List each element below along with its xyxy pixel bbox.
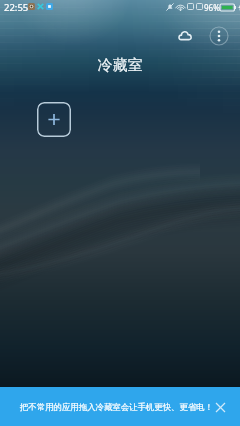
button[interactable]: Cloud backup [171, 22, 199, 50]
staticText: 96% [204, 2, 220, 13]
button[interactable]: More options [205, 22, 233, 50]
staticText: 把不常用的应用拖入冷藏室会让手机更快、更省电！ [20, 402, 213, 413]
staticText: 冷藏室 [0, 56, 240, 75]
staticText: 22:55 [4, 1, 29, 14]
button[interactable]: 把不常用的应用拖入冷藏室会让手机更快、更省电！ [0, 387, 240, 426]
button[interactable]: Add app [37, 102, 71, 137]
button[interactable]: Close [208, 395, 232, 419]
